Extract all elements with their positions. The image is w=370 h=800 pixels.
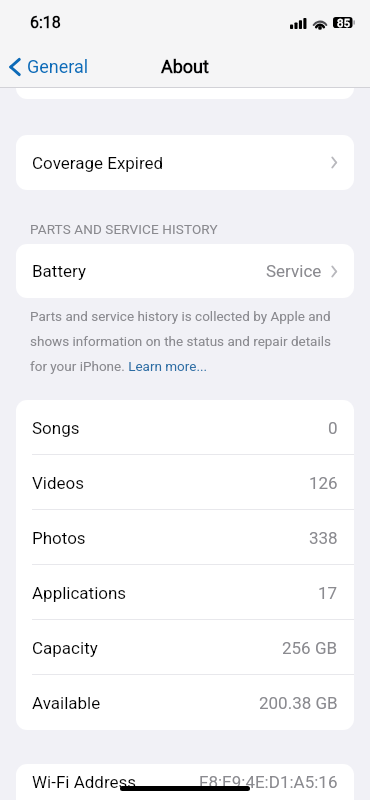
staticText: Photos [32,528,86,548]
staticText: Wi-Fi Address [32,772,137,792]
staticText: 126 [309,473,338,493]
staticText: 200.38 GB [259,693,338,713]
staticText: 338 [309,528,338,548]
staticText: Applications [32,583,127,603]
button[interactable]: Videos [16,455,354,510]
staticText: 6:18 [30,13,61,32]
staticText: About [161,56,209,77]
button[interactable]: Battery [16,244,354,298]
button[interactable]: Applications [16,565,354,620]
button[interactable]: Available [16,675,354,730]
staticText: 85 [337,16,350,29]
staticText: 0 [328,418,338,438]
staticText: 256 GB [282,638,338,658]
button[interactable]: Wi-Fi Address [16,764,354,800]
staticText: Parts and service history is collected b… [30,308,344,374]
button[interactable]: General [5,50,93,83]
button[interactable]: Songs [16,400,354,455]
staticText: PARTS AND SERVICE HISTORY [30,221,218,237]
staticText: Coverage Expired [32,153,164,173]
button[interactable]: Photos [16,510,354,565]
staticText: F8:E9:4E:D1:A5:16 [199,772,338,792]
staticText: Videos [32,473,85,493]
staticText: Battery [32,261,86,281]
staticText: Songs [32,418,80,438]
staticText: Available [32,693,101,713]
button[interactable]: Coverage Expired [16,135,354,190]
staticText: Capacity [32,638,98,658]
staticText: 17 [318,583,338,603]
staticText: General [27,56,89,77]
staticText: Service [266,261,322,281]
button[interactable]: Capacity [16,620,354,675]
